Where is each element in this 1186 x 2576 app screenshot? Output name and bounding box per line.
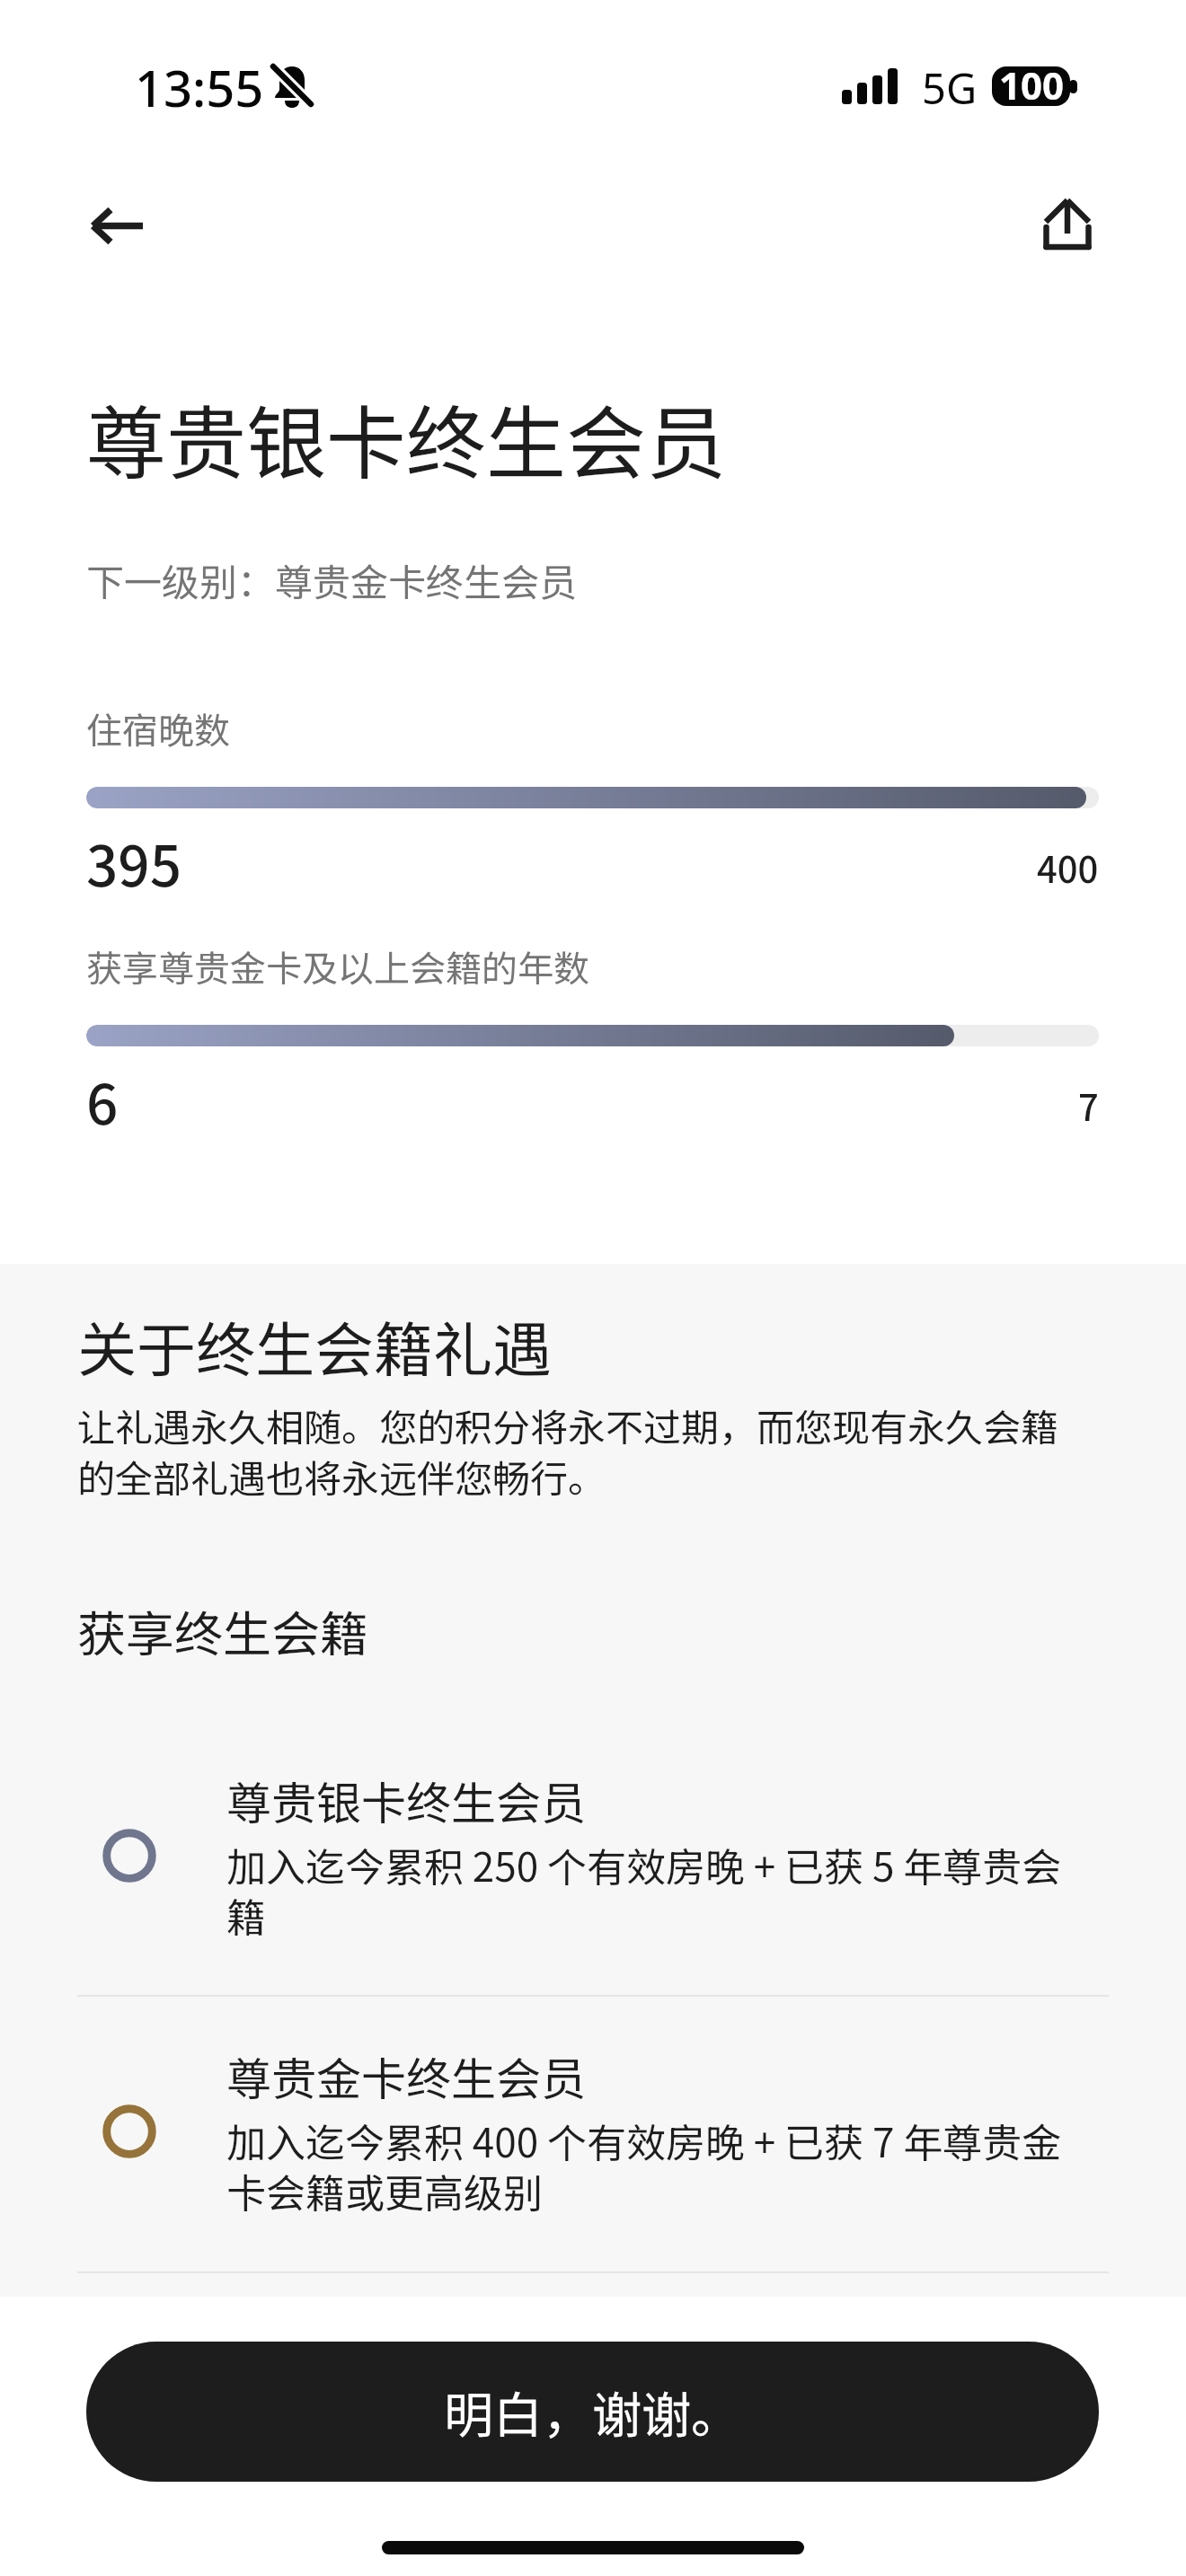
staticText: 6 — [86, 1060, 119, 1141]
staticText: 下一级别：尊贵金卡终生会员 — [86, 552, 578, 607]
staticText: 让礼遇永久相随。您的积分将永不过期，而您现有永久会籍的全部礼遇也将永远伴您畅行。 — [77, 1398, 1069, 1504]
staticText: 100 — [999, 59, 1065, 110]
staticText: 明白，谢谢。 — [444, 2376, 741, 2448]
staticText: 5G — [922, 59, 978, 117]
staticText: 关于终生会籍礼遇 — [77, 1302, 552, 1389]
button[interactable]: Back — [70, 163, 167, 260]
button[interactable]: 尊贵银卡终生会员 — [0, 1716, 1186, 1995]
button[interactable]: 尊贵金卡终生会员 — [0, 1997, 1186, 2272]
staticText: 获享终生会籍 — [77, 1595, 368, 1665]
staticText: 尊贵银卡终生会员 — [86, 380, 726, 496]
button[interactable]: 明白，谢谢。 — [86, 2342, 1099, 2482]
button[interactable]: Share — [1019, 191, 1116, 274]
staticText: 加入迄今累积 250 个有效房晚 + 已获 5 年尊贵会籍 — [226, 1836, 1087, 1944]
staticText: 加入迄今累积 400 个有效房晚 + 已获 7 年尊贵金卡会籍或更高级别 — [226, 2112, 1087, 2219]
staticText: 尊贵金卡终生会员 — [226, 2043, 586, 2108]
staticText: 尊贵银卡终生会员 — [226, 1768, 586, 1832]
staticText: 7 — [1078, 1080, 1099, 1132]
staticText: 获享尊贵金卡及以上会籍的年数 — [86, 940, 589, 992]
staticText: 400 — [1037, 842, 1099, 894]
staticText: 395 — [86, 822, 182, 903]
staticText: 住宿晚数 — [86, 702, 230, 754]
staticText: 13:55 — [135, 53, 264, 121]
